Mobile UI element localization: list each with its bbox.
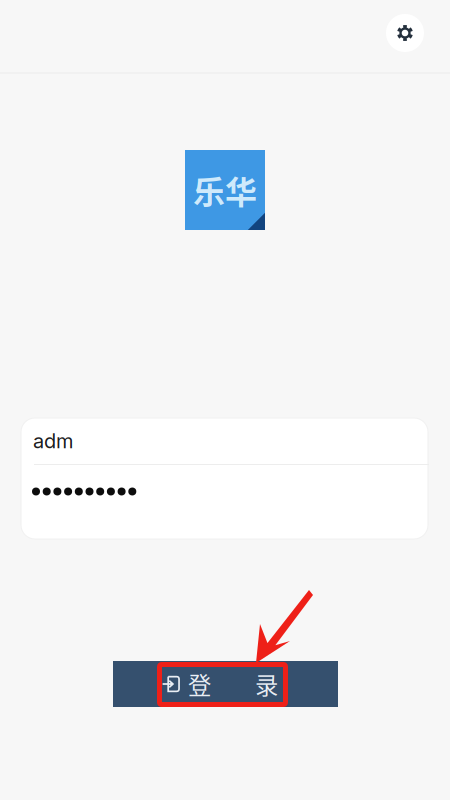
button[interactable]: Password (21, 465, 428, 518)
staticText: 乐华 (193, 167, 257, 213)
button[interactable]: 登 (113, 661, 338, 707)
staticText: 录 (255, 667, 278, 701)
staticText: adm (33, 429, 73, 453)
staticText: 登 (188, 667, 211, 701)
button[interactable]: Settings (386, 14, 424, 52)
button[interactable]: adm (21, 418, 428, 464)
